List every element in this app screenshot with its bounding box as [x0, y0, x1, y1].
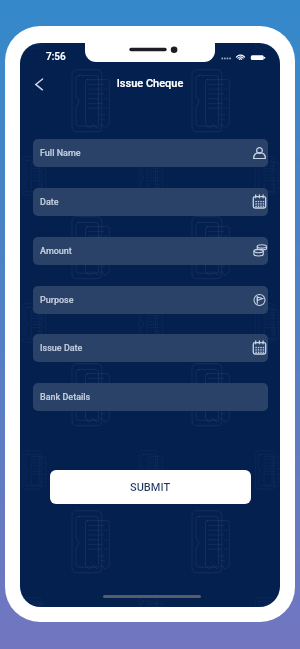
button[interactable]: Purpose: [33, 286, 268, 314]
staticText: Date: [40, 197, 59, 208]
button[interactable]: Amount: [33, 237, 268, 265]
staticText: Full Name: [40, 148, 81, 159]
staticText: Amount: [40, 246, 72, 257]
button[interactable]: Bank Details: [33, 383, 268, 411]
button[interactable]: Date: [33, 188, 268, 216]
button[interactable]: SUBMIT: [50, 470, 251, 504]
button[interactable]: Back: [25, 70, 53, 98]
staticText: Issue Date: [40, 343, 83, 354]
staticText: 7:56: [46, 51, 66, 63]
button[interactable]: Full Name: [33, 139, 268, 167]
staticText: Purpose: [40, 295, 74, 306]
button[interactable]: Issue Date: [33, 334, 268, 362]
staticText: SUBMIT: [130, 481, 171, 494]
staticText: Bank Details: [40, 392, 91, 403]
staticText: Issue Cheque: [20, 77, 280, 91]
